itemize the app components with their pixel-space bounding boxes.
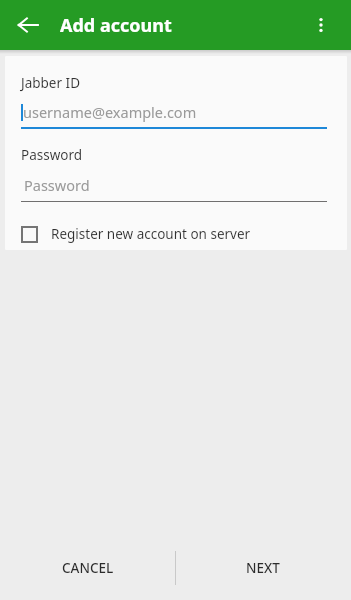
staticText: Jabber ID — [21, 74, 80, 92]
staticText: username@example.com — [23, 102, 197, 122]
button[interactable]: username@example.com — [21, 102, 327, 129]
button[interactable]: Password — [21, 175, 327, 202]
button[interactable]: More options — [300, 4, 342, 46]
button[interactable]: Back — [6, 3, 50, 47]
staticText: Register new account on server — [51, 225, 251, 243]
staticText: CANCEL — [62, 559, 114, 577]
staticText: Add account — [60, 13, 172, 38]
staticText: NEXT — [246, 559, 280, 577]
button[interactable]: Register new account on server — [21, 218, 331, 250]
button[interactable]: CANCEL — [0, 544, 175, 592]
button[interactable]: NEXT — [175, 544, 351, 592]
staticText: Password — [21, 146, 83, 164]
staticText: Password — [24, 175, 90, 195]
